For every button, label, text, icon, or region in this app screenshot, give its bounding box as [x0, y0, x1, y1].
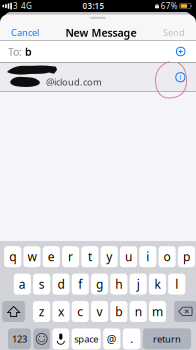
staticText: b [115, 303, 122, 319]
staticText: Send [163, 26, 185, 39]
button[interactable]: r [62, 246, 79, 267]
staticText: s [39, 276, 45, 292]
button[interactable]: v [91, 301, 108, 322]
staticText: t [88, 249, 92, 265]
staticText: return [153, 333, 181, 345]
staticText: n [135, 303, 142, 319]
button[interactable]: c [72, 301, 89, 322]
button[interactable]: Dictate [52, 328, 69, 349]
button[interactable]: Send [161, 24, 187, 41]
staticText: a [19, 276, 26, 292]
staticText: m [152, 303, 163, 319]
staticText: q [9, 249, 16, 265]
button[interactable]: y [101, 246, 118, 267]
staticText: 03:15 [82, 1, 104, 11]
staticText: j [137, 276, 140, 292]
staticText [8, 61, 17, 76]
button[interactable]: Emoji [33, 328, 50, 349]
staticText: b [22, 44, 32, 59]
button[interactable]: e [43, 246, 60, 267]
staticText: f [78, 276, 82, 292]
button[interactable]: j [130, 274, 147, 295]
staticText: 4G [21, 1, 32, 11]
button[interactable]: p [178, 246, 195, 267]
staticText: space [74, 333, 98, 345]
button[interactable]: n [130, 301, 147, 322]
button[interactable]: Delete [174, 301, 196, 322]
staticText: Cancel [11, 26, 39, 39]
button[interactable]: w [23, 246, 41, 267]
staticText: To: [8, 44, 22, 59]
button[interactable]: f [72, 274, 89, 295]
staticText: i [179, 73, 181, 82]
staticText: 67% [161, 1, 178, 11]
staticText: i [146, 249, 149, 265]
button[interactable]: q [4, 246, 21, 267]
staticText: 123 [12, 333, 27, 345]
button[interactable]: Contact Info [173, 70, 188, 85]
button[interactable]: Shift [2, 301, 25, 322]
button[interactable]: return [143, 328, 191, 349]
staticText: w [27, 249, 36, 265]
button[interactable]: Add Contact [173, 44, 188, 59]
staticText: h [115, 276, 122, 292]
staticText: u [125, 249, 132, 265]
button[interactable]: s [33, 274, 50, 295]
staticText: d [57, 276, 64, 292]
staticText: y [106, 249, 112, 265]
staticText: @ [107, 332, 117, 346]
staticText: p [183, 249, 190, 265]
button[interactable]: u [120, 246, 137, 267]
staticText: l [175, 276, 178, 292]
button[interactable]: . [123, 328, 140, 349]
button[interactable]: d [52, 274, 69, 295]
button[interactable]: Cancel [9, 24, 41, 41]
staticText: New Message [65, 25, 136, 40]
button[interactable]: x [52, 301, 69, 322]
button[interactable]: o [159, 246, 176, 267]
button[interactable]: h [110, 274, 127, 295]
staticText: x [58, 303, 64, 319]
button[interactable]: m [149, 301, 166, 322]
staticText: 3 [13, 1, 18, 11]
button[interactable]: b [110, 301, 127, 322]
button[interactable]: z [33, 301, 50, 322]
button[interactable]: t [81, 246, 98, 267]
staticText: . [130, 332, 133, 346]
staticText: r [68, 249, 73, 265]
staticText: k [154, 276, 160, 292]
staticText: @icloud.com [46, 76, 102, 88]
button[interactable]: @ [103, 328, 120, 349]
staticText: o [164, 249, 171, 265]
button[interactable]: g [91, 274, 108, 295]
staticText: c [77, 303, 83, 319]
staticText: v [96, 303, 102, 319]
button[interactable]: a [14, 274, 31, 295]
staticText: e [48, 249, 55, 265]
button[interactable]: 123 [8, 328, 31, 349]
button[interactable]: k [149, 274, 166, 295]
button[interactable]: l [168, 274, 185, 295]
staticText: z [39, 303, 45, 319]
button[interactable]: i [139, 246, 156, 267]
button[interactable]: space [72, 328, 101, 349]
staticText: g [96, 276, 103, 292]
